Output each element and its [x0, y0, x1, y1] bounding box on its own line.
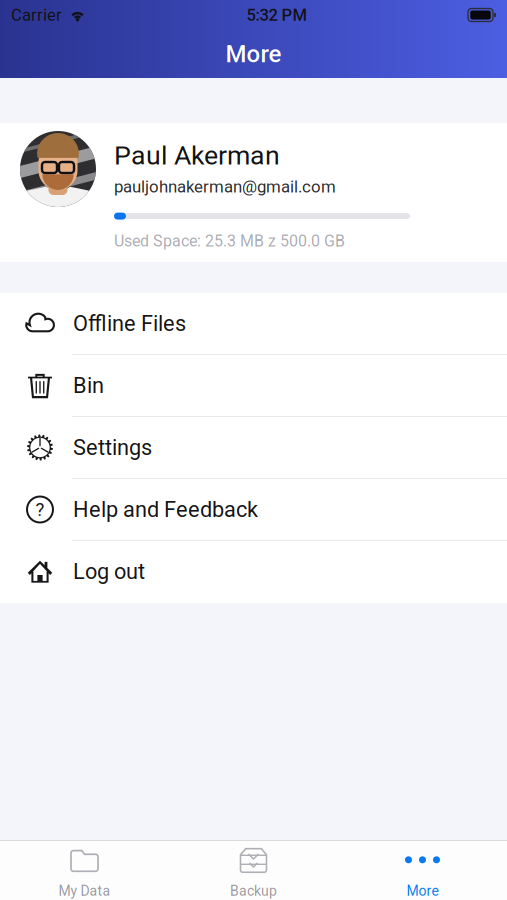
button[interactable]: Settings	[0, 417, 507, 479]
staticText: Paul Akerman	[114, 140, 280, 171]
staticText: Backup	[230, 883, 277, 899]
button[interactable]: Bin	[0, 355, 507, 417]
staticText: More	[225, 40, 281, 68]
staticText: Settings	[73, 435, 152, 460]
staticText: Offline Files	[73, 311, 186, 336]
staticText: pauljohnakerman@gmail.com	[114, 177, 336, 197]
staticText: Used Space: 25.3 MB z 500.0 GB	[114, 232, 345, 250]
button[interactable]: Log out	[0, 541, 507, 603]
staticText: Bin	[73, 373, 104, 398]
button[interactable]: Backup	[169, 841, 338, 900]
staticText: Log out	[73, 559, 145, 584]
staticText: Help and Feedback	[73, 497, 258, 522]
staticText: 5:32 PM	[246, 5, 307, 25]
staticText: Carrier	[11, 5, 62, 25]
staticText: My Data	[58, 883, 110, 899]
staticText: More	[406, 883, 438, 899]
button[interactable]: My Data	[0, 841, 169, 900]
staticText: ?	[35, 499, 44, 520]
button[interactable]: ?	[0, 479, 507, 541]
button[interactable]: More	[338, 841, 507, 900]
button[interactable]: More	[0, 30, 507, 78]
button[interactable]: Offline Files	[0, 293, 507, 355]
